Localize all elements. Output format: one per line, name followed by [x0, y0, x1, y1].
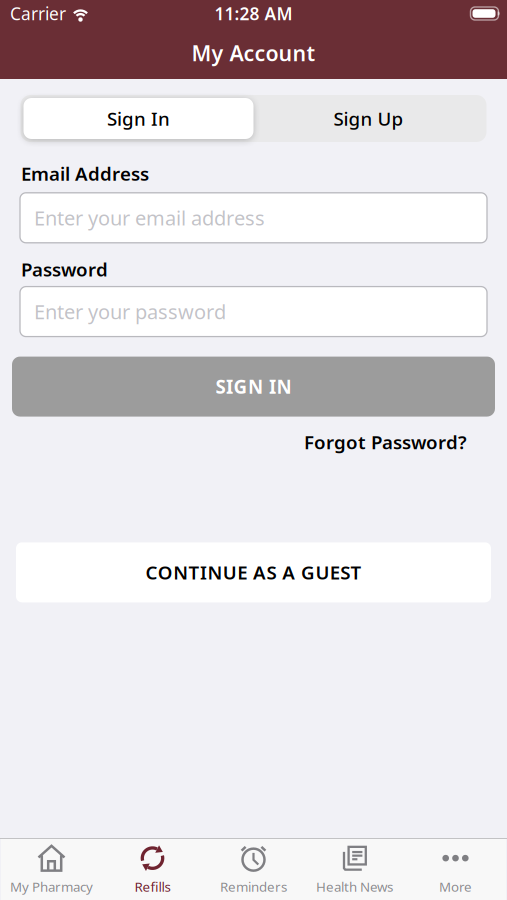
staticText: Sign Up [333, 106, 403, 131]
button[interactable]: Sign In [23, 98, 253, 139]
staticText: Health News [316, 878, 393, 895]
button[interactable]: Enter your password [0, 287, 507, 337]
button[interactable]: Refills [102, 841, 203, 897]
staticText: Password [21, 257, 108, 282]
button[interactable]: Enter your email address [0, 193, 507, 243]
staticText: Sign In [107, 106, 170, 131]
staticText: My Pharmacy [10, 878, 93, 895]
staticText: CONTINUE AS A GUEST [145, 560, 362, 585]
staticText: More [439, 878, 472, 895]
staticText: SIGN IN [215, 374, 291, 399]
button[interactable]: CONTINUE AS A GUEST [0, 542, 507, 602]
button[interactable]: Sign Up [253, 98, 483, 139]
staticText: My Account [191, 39, 315, 67]
button[interactable]: Reminders [203, 841, 304, 897]
button[interactable]: Forgot Password? [304, 430, 467, 454]
staticText: 11:28 AM [214, 2, 292, 25]
staticText: Forgot Password? [304, 430, 467, 454]
button[interactable]: My Pharmacy [1, 841, 102, 897]
button[interactable]: Health News [304, 841, 405, 897]
staticText: Email Address [21, 161, 149, 186]
staticText: Carrier [10, 2, 66, 25]
staticText: Refills [134, 878, 170, 895]
button[interactable]: More [405, 841, 506, 897]
button[interactable]: SIGN IN [0, 357, 507, 417]
staticText: Enter your password [34, 298, 226, 325]
staticText: Enter your email address [34, 204, 265, 231]
staticText: Reminders [220, 878, 287, 895]
